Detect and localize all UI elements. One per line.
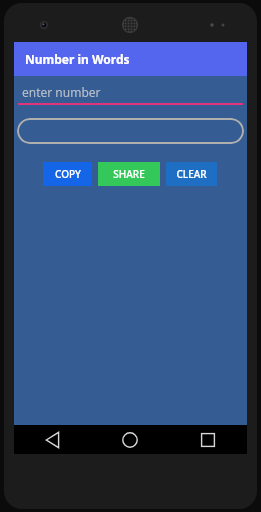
button[interactable]: Back	[14, 425, 91, 454]
staticText: Number in Words	[25, 51, 130, 67]
staticText: enter number	[22, 84, 101, 100]
button[interactable]: CLEAR	[166, 162, 217, 186]
button[interactable]: COPY	[43, 162, 92, 186]
staticText: COPY	[55, 167, 81, 181]
staticText: CLEAR	[176, 167, 207, 181]
button[interactable]: Home	[91, 425, 169, 454]
button[interactable]: enter number	[18, 84, 243, 105]
button[interactable]: Recents	[169, 425, 247, 454]
button[interactable]: SHARE	[98, 162, 160, 186]
staticText: SHARE	[113, 167, 145, 181]
